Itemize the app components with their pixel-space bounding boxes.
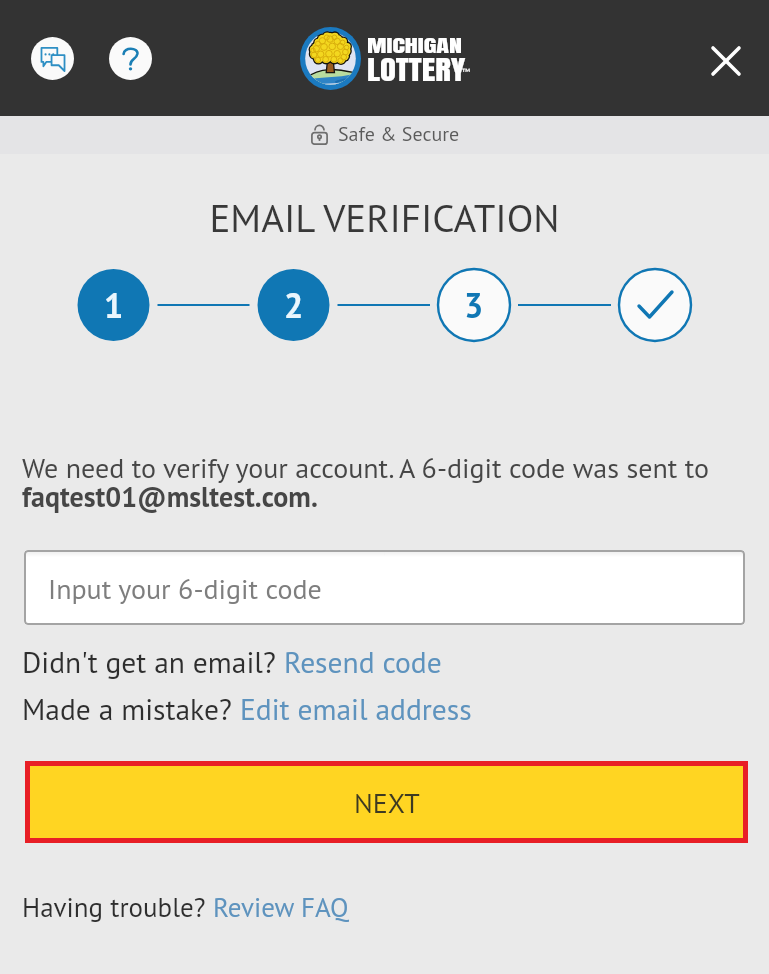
staticText: 1 [104, 283, 124, 327]
staticText: Safe & Secure [338, 121, 460, 147]
staticText: 3 [464, 283, 484, 327]
staticText: EMAIL VERIFICATION [0, 192, 769, 242]
staticText: Input your 6-digit code [48, 570, 322, 606]
button[interactable]: Chat with us [31, 37, 74, 80]
button[interactable]: 3 [438, 269, 510, 341]
staticText: ™ [462, 66, 470, 78]
staticText: Having trouble? [22, 890, 213, 925]
staticText: Didn't get an email? [22, 643, 284, 681]
staticText: 2 [284, 283, 304, 327]
staticText: We need to verify your account. A 6-digi… [22, 449, 748, 515]
button[interactable]: Edit email address [240, 690, 472, 728]
staticText: Made a mistake? [22, 690, 240, 728]
staticText: NEXT [354, 784, 420, 820]
button[interactable]: Close [703, 38, 749, 84]
button[interactable]: Help [109, 37, 152, 80]
button[interactable]: NEXT [30, 766, 743, 838]
button[interactable]: Review FAQ [213, 890, 349, 925]
button[interactable]: Input your 6-digit code [24, 550, 745, 625]
button[interactable]: 1 [78, 269, 150, 341]
button[interactable]: Resend code [284, 643, 442, 681]
staticText: MICHIGAN [367, 32, 463, 59]
staticText: LOTTERY [367, 49, 466, 90]
button[interactable]: 2 [258, 269, 330, 341]
